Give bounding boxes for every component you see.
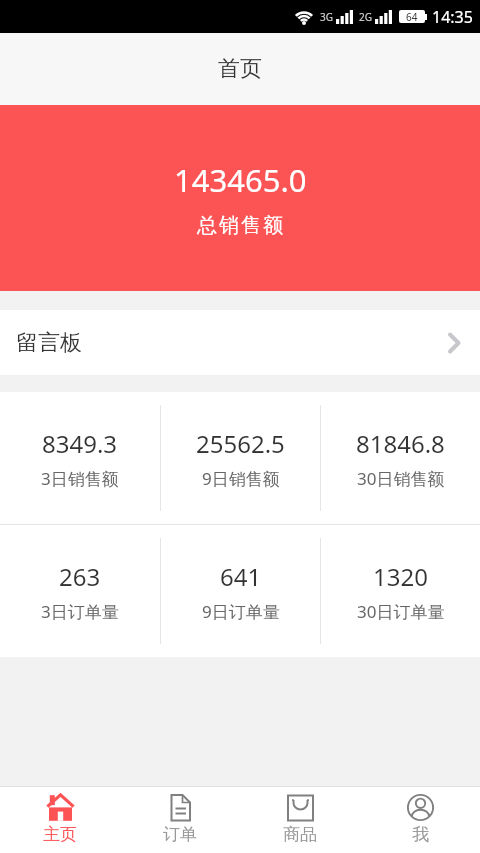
- staticText: 143465.0: [174, 159, 307, 201]
- button[interactable]: 81846.8: [321, 392, 480, 524]
- button[interactable]: 主页: [0, 787, 120, 853]
- button[interactable]: 263: [0, 525, 160, 657]
- staticText: 9日订单量: [202, 600, 280, 623]
- staticText: 263: [59, 560, 101, 593]
- staticText: 2G: [359, 10, 372, 24]
- staticText: 首页: [218, 55, 262, 83]
- staticText: 641: [220, 560, 262, 593]
- button[interactable]: 商品: [240, 787, 360, 853]
- button[interactable]: 8349.3: [0, 392, 160, 524]
- button[interactable]: 留言板: [0, 310, 480, 375]
- staticText: 留言板: [16, 329, 82, 357]
- staticText: 3G: [320, 10, 333, 24]
- button[interactable]: 我: [360, 787, 480, 853]
- button[interactable]: 143465.0: [0, 105, 480, 291]
- staticText: 30日销售额: [357, 467, 445, 490]
- staticText: 总销售额: [196, 213, 284, 238]
- staticText: 主页: [43, 824, 77, 845]
- staticText: 14:35: [432, 6, 473, 28]
- staticText: 25562.5: [196, 427, 285, 460]
- staticText: 64: [406, 10, 418, 23]
- staticText: 3日订单量: [41, 600, 119, 623]
- button[interactable]: 订单: [120, 787, 240, 853]
- button[interactable]: 1320: [321, 525, 480, 657]
- staticText: 81846.8: [356, 427, 445, 460]
- staticText: 8349.3: [42, 427, 118, 460]
- staticText: 30日订单量: [357, 600, 445, 623]
- staticText: 1320: [373, 560, 428, 593]
- button[interactable]: 641: [161, 525, 320, 657]
- staticText: 商品: [283, 824, 317, 845]
- staticText: 3日销售额: [41, 467, 119, 490]
- staticText: 我: [412, 824, 429, 845]
- staticText: 9日销售额: [202, 467, 280, 490]
- button[interactable]: 25562.5: [161, 392, 320, 524]
- staticText: 订单: [163, 824, 197, 845]
